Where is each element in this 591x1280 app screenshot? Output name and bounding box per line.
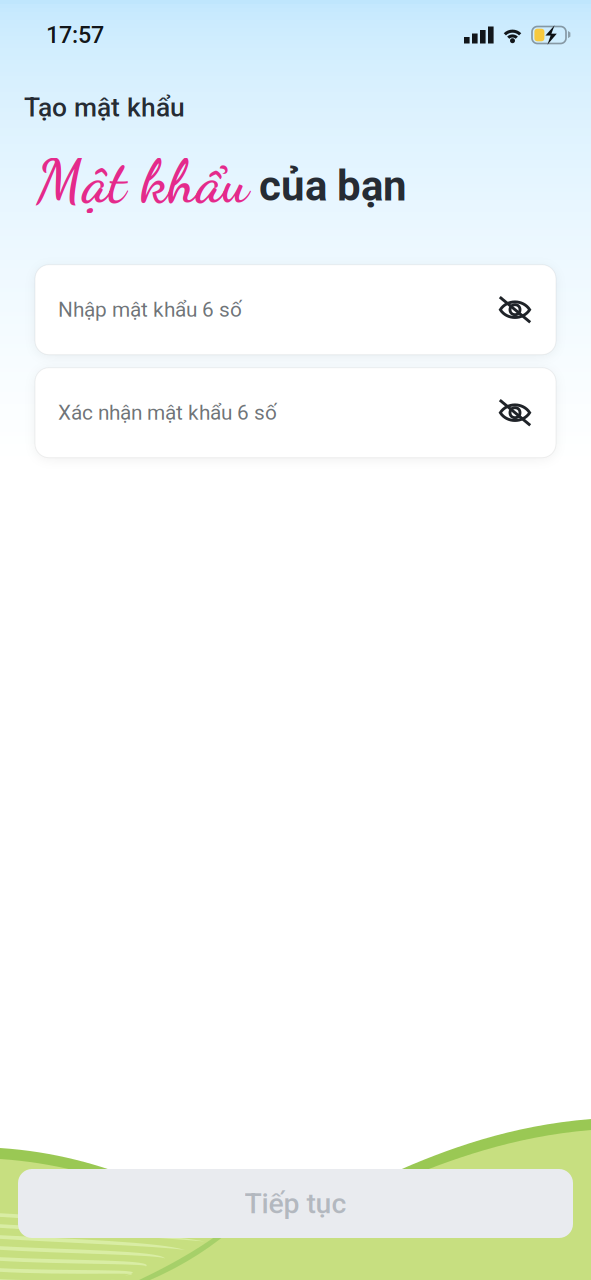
staticText: 17:57 (46, 21, 104, 49)
staticText: Mật khẩu (36, 147, 249, 217)
staticText: Tiếp tục (244, 1187, 346, 1220)
button[interactable]: Tiếp tục (18, 1169, 573, 1238)
staticText: Xác nhận mật khẩu 6 số (58, 400, 277, 425)
staticText: của bạn (249, 161, 407, 211)
staticText: Nhập mật khẩu 6 số (58, 297, 242, 322)
staticText: Tạo mật khẩu (24, 92, 185, 123)
button[interactable]: Hiện mật khẩu xác nhận (489, 387, 541, 439)
button[interactable]: Hiện mật khẩu (489, 284, 541, 336)
